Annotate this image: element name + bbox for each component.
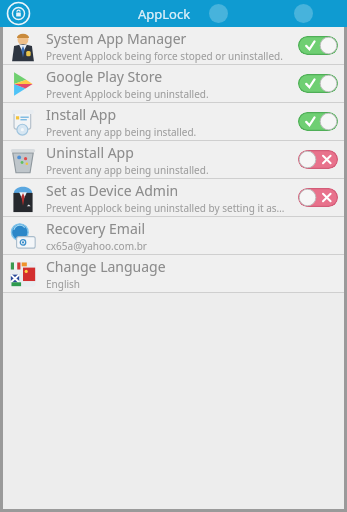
staticText: Recovery Email xyxy=(46,219,146,238)
staticText: Prevent any app being installed. xyxy=(46,125,197,139)
staticText: Prevent any app being uninstalled. xyxy=(46,163,209,177)
staticText: Prevent Applock being uninstalled. xyxy=(46,87,209,101)
button[interactable]: Install App xyxy=(3,103,344,140)
button[interactable]: Google Play Store xyxy=(3,65,344,102)
button[interactable]: System App Manager xyxy=(3,27,344,64)
button[interactable]: Change Language xyxy=(3,255,344,292)
button[interactable]: Uninstall App off xyxy=(298,150,338,169)
button[interactable]: Uninstall App xyxy=(3,141,344,178)
button[interactable]: Set as Device Admin xyxy=(3,179,344,216)
staticText: Set as Device Admin xyxy=(46,181,179,200)
staticText: cx65a@yahoo.com.br xyxy=(46,239,147,253)
button[interactable]: Action one xyxy=(209,4,228,23)
button[interactable]: Action two xyxy=(294,4,313,23)
staticText: Uninstall App xyxy=(46,143,134,162)
staticText: System App Manager xyxy=(46,29,187,48)
staticText: Prevent Applock being force stoped or un… xyxy=(46,49,283,63)
button[interactable]: Recovery Email xyxy=(3,217,344,254)
staticText: AppLock xyxy=(138,5,191,23)
button[interactable]: Google Play Store on xyxy=(298,74,338,93)
button[interactable]: Set as Device Admin off xyxy=(298,188,338,207)
staticText: Change Language xyxy=(46,257,166,276)
staticText: Install App xyxy=(46,105,117,124)
button[interactable]: AppLock home xyxy=(6,1,31,26)
staticText: English xyxy=(46,277,81,291)
staticText: Google Play Store xyxy=(46,67,163,86)
button[interactable]: System App Manager on xyxy=(298,36,338,55)
staticText: Prevent Applock being uninstalled by set… xyxy=(46,201,285,215)
button[interactable]: Install App on xyxy=(298,112,338,131)
